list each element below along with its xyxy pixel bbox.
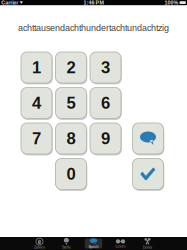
staticText: 7: [32, 129, 41, 148]
staticText: 0: [66, 165, 75, 183]
button[interactable]: 2: [54, 50, 88, 84]
staticText: 5: [66, 94, 75, 112]
staticText: Carrier: [1, 0, 18, 6]
staticText: 1: [32, 58, 41, 77]
staticText: 8: [66, 129, 75, 148]
button[interactable]: 9: [88, 121, 122, 155]
button[interactable]: 7: [19, 121, 53, 155]
button[interactable]: Extras: [137, 237, 158, 250]
staticText: Stelle: [62, 245, 71, 249]
button[interactable]: 6: [88, 86, 122, 120]
staticText: 6: [101, 94, 110, 112]
staticText: 3: [101, 58, 110, 77]
staticText: 100%: [164, 0, 178, 6]
button[interactable]: 4: [19, 86, 53, 120]
staticText: Sprich: [88, 245, 98, 249]
staticText: 1:46 PM: [83, 0, 103, 6]
staticText: Lesen: [115, 244, 125, 248]
staticText: achttausendachthundertachtundachtzig: [18, 23, 169, 33]
staticText: Zahlen: [34, 245, 45, 249]
button[interactable]: 5: [54, 86, 88, 120]
button[interactable]: Confirm: [131, 157, 165, 191]
button[interactable]: 1: [19, 50, 53, 84]
button[interactable]: Lesen: [110, 237, 131, 250]
staticText: 4: [32, 94, 41, 112]
staticText: Extras: [142, 245, 152, 249]
staticText: 9: [101, 129, 110, 148]
button[interactable]: 3: [88, 50, 122, 84]
button[interactable]: Sprich: [83, 237, 104, 250]
button[interactable]: 0: [54, 157, 88, 191]
button[interactable]: Speak: [131, 121, 165, 155]
button[interactable]: Zahlen: [29, 237, 50, 250]
button[interactable]: Stelle: [56, 237, 77, 250]
button[interactable]: 8: [54, 121, 88, 155]
staticText: 2: [66, 58, 75, 77]
